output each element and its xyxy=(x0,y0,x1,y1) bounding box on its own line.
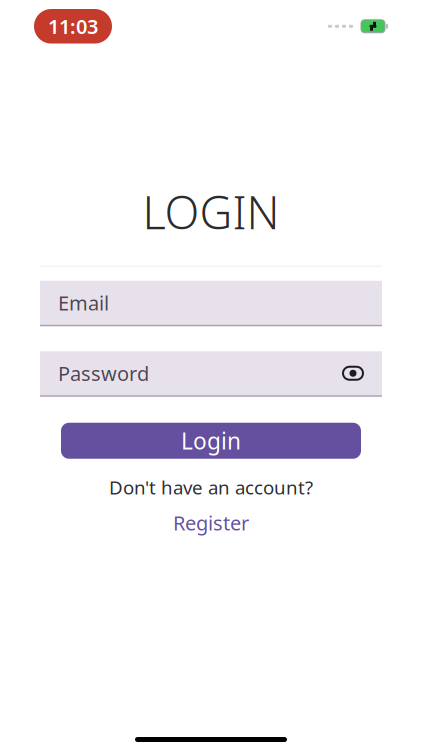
button[interactable]: Register xyxy=(165,507,257,538)
button[interactable]: Email xyxy=(40,281,382,326)
staticText: Email xyxy=(58,289,109,316)
staticText: Password xyxy=(58,360,149,387)
button[interactable]: Login xyxy=(61,423,361,459)
button[interactable]: Password xyxy=(40,351,382,397)
staticText: 11:03 xyxy=(48,13,98,40)
staticText: Login xyxy=(181,426,241,456)
staticText: Register xyxy=(173,509,249,536)
staticText: LOGIN xyxy=(142,182,279,242)
staticText: Don't have an account? xyxy=(109,475,313,500)
